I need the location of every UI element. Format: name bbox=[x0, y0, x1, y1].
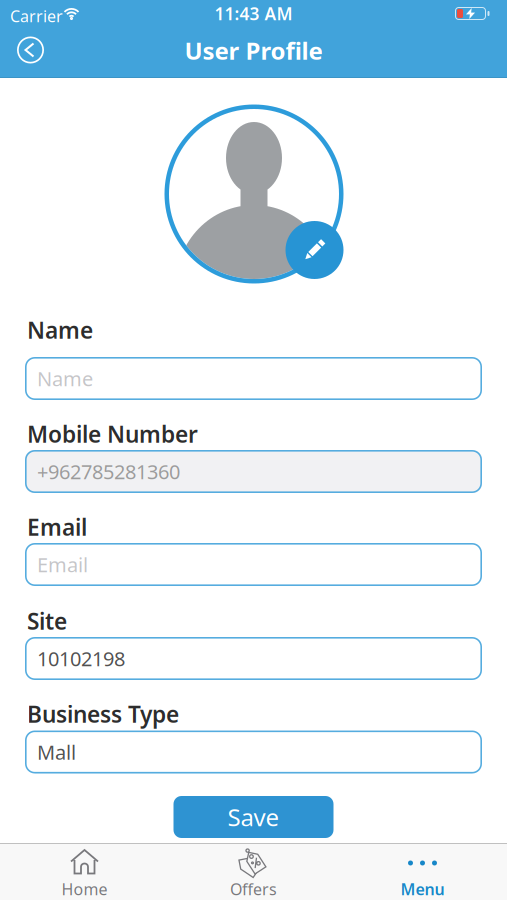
button[interactable]: +962785281360 bbox=[25, 450, 482, 493]
staticText: Name bbox=[27, 315, 93, 345]
button[interactable]: 10102198 bbox=[25, 637, 482, 680]
staticText: Home bbox=[61, 878, 107, 900]
button[interactable] bbox=[12, 32, 48, 68]
staticText: Mall bbox=[37, 739, 76, 765]
button[interactable]: Mall bbox=[25, 730, 482, 773]
staticText: Save bbox=[227, 801, 279, 833]
staticText: 11:43 AM bbox=[214, 2, 292, 25]
button[interactable]: Email bbox=[25, 543, 482, 586]
staticText: 10102198 bbox=[37, 645, 125, 672]
staticText: Name bbox=[37, 365, 93, 392]
staticText: Mobile Number bbox=[27, 419, 198, 449]
button[interactable]: Offers bbox=[169, 843, 338, 900]
staticText: Carrier bbox=[10, 5, 63, 27]
staticText: Business Type bbox=[27, 699, 179, 729]
button[interactable]: Home bbox=[0, 843, 169, 900]
staticText: Offers bbox=[230, 878, 277, 900]
button[interactable]: Menu bbox=[338, 843, 507, 900]
staticText: Menu bbox=[400, 878, 444, 900]
staticText: Site bbox=[27, 606, 67, 636]
button[interactable]: Name bbox=[25, 357, 482, 400]
button[interactable]: Save bbox=[173, 796, 333, 838]
staticText: User Profile bbox=[184, 35, 322, 66]
button[interactable] bbox=[285, 221, 343, 279]
staticText: Email bbox=[27, 512, 87, 542]
staticText: +962785281360 bbox=[37, 458, 180, 485]
staticText: Email bbox=[37, 551, 88, 578]
